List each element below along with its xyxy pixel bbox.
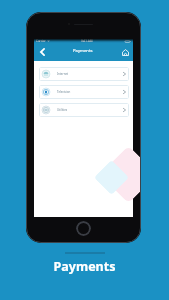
button[interactable]: Back	[36, 44, 49, 60]
button[interactable]: Utilities	[39, 103, 129, 117]
staticText: Utilities	[57, 108, 68, 112]
staticText: Television	[57, 90, 71, 94]
staticText: Payments	[73, 48, 93, 54]
button[interactable]: Internet	[39, 67, 129, 81]
staticText: Carrier	[36, 39, 46, 43]
button[interactable]: Television	[39, 85, 129, 99]
staticText: 9:41 AM	[81, 39, 93, 43]
button[interactable]: Home button	[76, 221, 91, 236]
staticText: Internet	[57, 72, 69, 76]
staticText: Payments	[0, 258, 169, 275]
button[interactable]: Home	[119, 44, 132, 60]
